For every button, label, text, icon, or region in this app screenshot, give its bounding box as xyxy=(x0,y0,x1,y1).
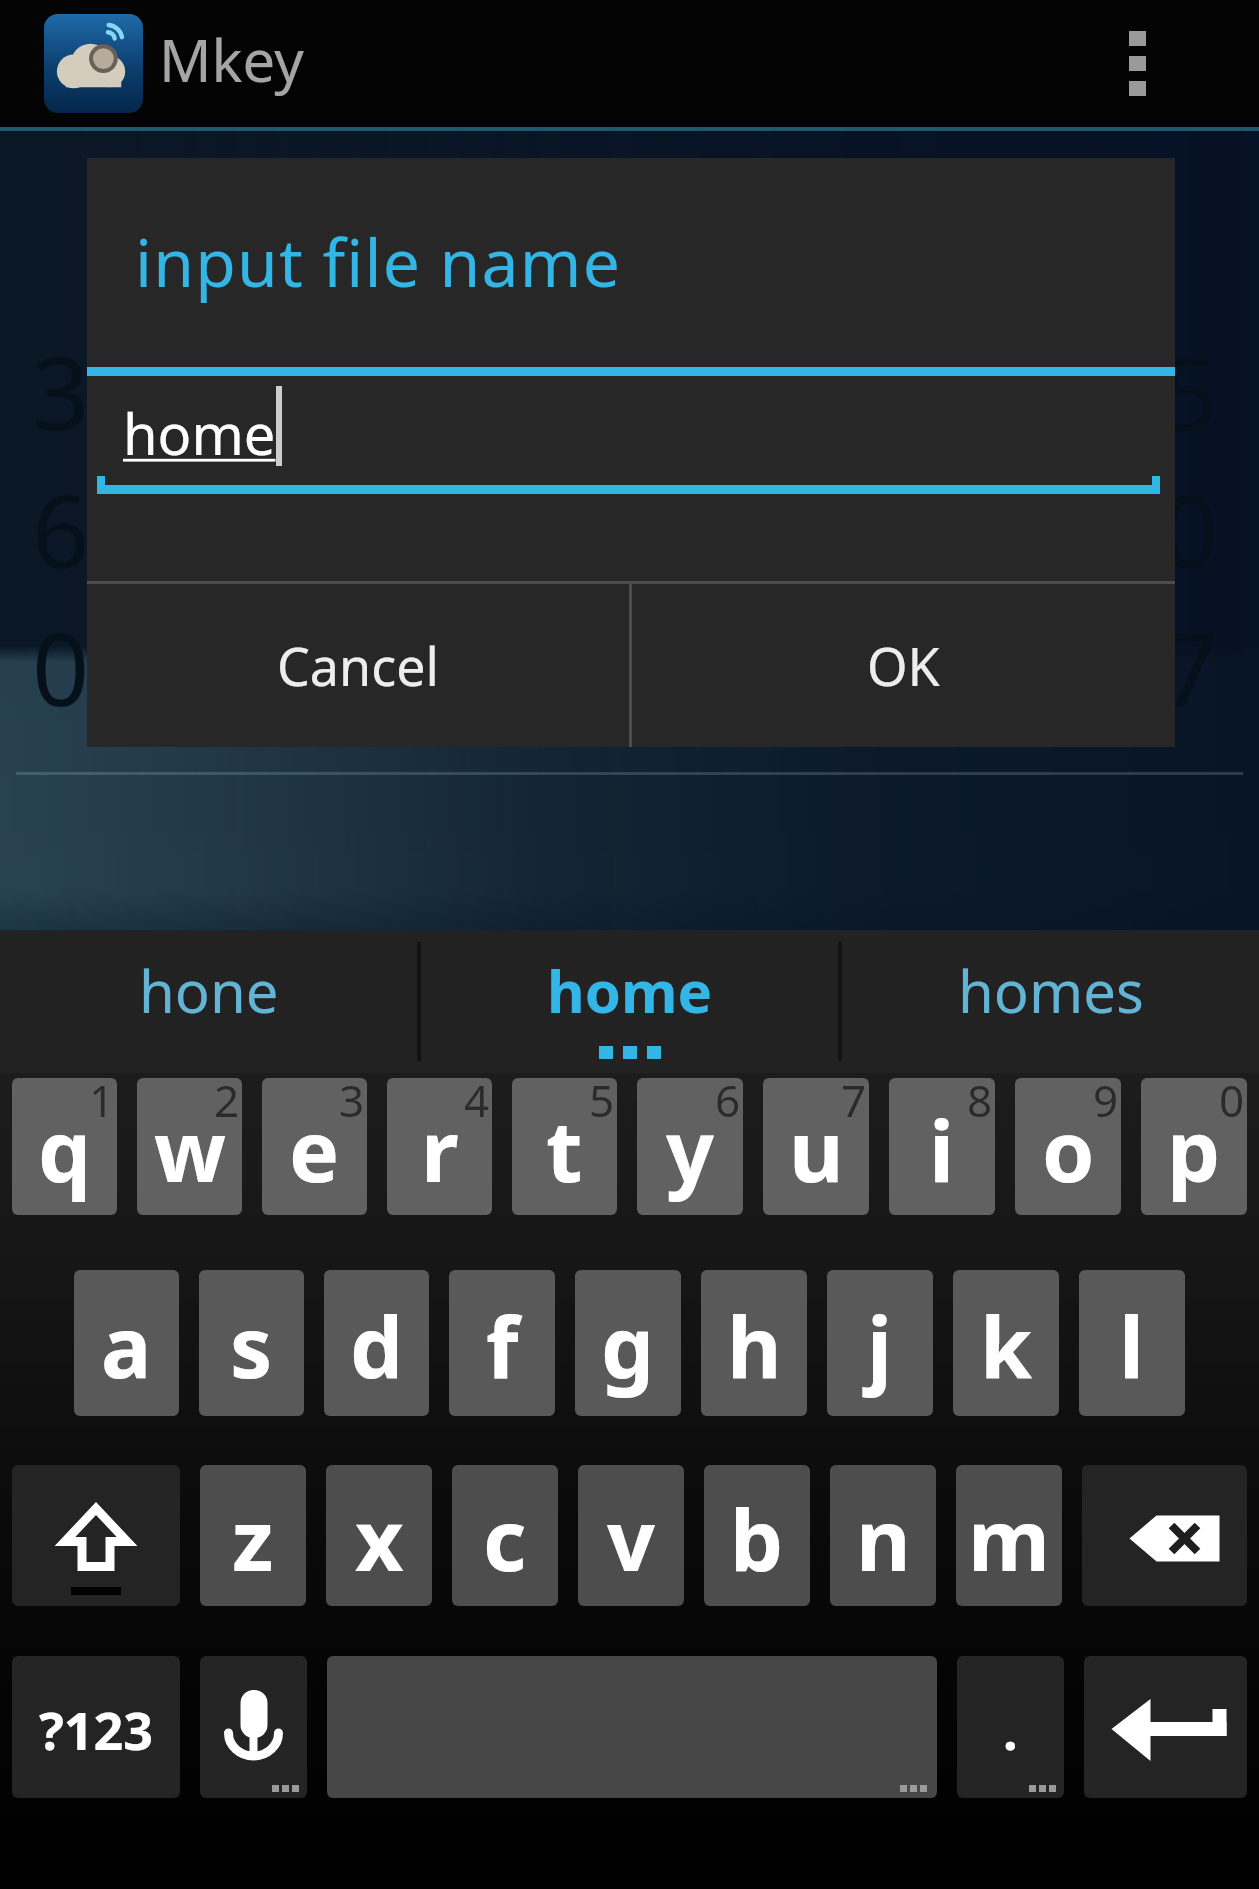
button[interactable]: . xyxy=(957,1656,1064,1798)
staticText: f xyxy=(486,1288,519,1402)
staticText: input file name xyxy=(135,216,622,306)
button[interactable]: z xyxy=(200,1465,306,1606)
staticText: 60 xyxy=(32,461,147,597)
button[interactable]: u xyxy=(763,1078,869,1215)
staticText: 5 xyxy=(1161,323,1219,459)
staticText: x xyxy=(355,1481,404,1595)
staticText: hone xyxy=(139,951,279,1030)
button[interactable]: OK xyxy=(632,584,1175,747)
button[interactable]: b xyxy=(704,1465,810,1606)
staticText: r xyxy=(421,1092,459,1206)
button[interactable]: homes xyxy=(842,930,1259,1073)
staticText: c xyxy=(483,1481,527,1595)
button[interactable]: Voice input xyxy=(200,1656,307,1798)
staticText: 08 xyxy=(32,599,147,735)
button[interactable]: r xyxy=(387,1078,492,1215)
button[interactable]: More options xyxy=(1077,0,1197,127)
button[interactable]: k xyxy=(953,1270,1059,1416)
button[interactable]: hone xyxy=(0,930,417,1073)
staticText: 4 xyxy=(464,1078,490,1130)
staticText: y xyxy=(666,1092,714,1206)
staticText: o xyxy=(1042,1092,1095,1206)
button[interactable]: t xyxy=(512,1078,617,1215)
button[interactable]: g xyxy=(575,1270,681,1416)
button[interactable]: p xyxy=(1141,1078,1247,1215)
button[interactable]: n xyxy=(830,1465,936,1606)
button[interactable]: d xyxy=(324,1270,429,1416)
button[interactable]: v xyxy=(578,1465,684,1606)
button[interactable]: s xyxy=(199,1270,304,1416)
staticText: h xyxy=(727,1288,782,1402)
button[interactable]: h xyxy=(701,1270,807,1416)
button[interactable]: y xyxy=(637,1078,743,1215)
staticText: a xyxy=(101,1288,152,1402)
button[interactable]: x xyxy=(326,1465,432,1606)
staticText: e xyxy=(289,1092,340,1206)
button[interactable]: o xyxy=(1015,1078,1121,1215)
staticText: OK xyxy=(867,630,940,701)
staticText: 0 xyxy=(1219,1078,1245,1130)
staticText: ?123 xyxy=(39,1694,154,1765)
staticText: 3 xyxy=(339,1078,365,1130)
button[interactable]: a xyxy=(74,1270,179,1416)
staticText: 7 xyxy=(841,1078,867,1130)
staticText: s xyxy=(230,1288,273,1402)
staticText: 7 xyxy=(1161,599,1219,735)
button[interactable]: Enter xyxy=(1084,1656,1247,1798)
staticText: i xyxy=(929,1092,955,1206)
staticText: 5 xyxy=(589,1078,615,1130)
button[interactable]: q xyxy=(12,1078,117,1215)
staticText: v xyxy=(607,1481,655,1595)
staticText: l xyxy=(1119,1288,1145,1402)
button[interactable]: l xyxy=(1079,1270,1185,1416)
staticText: z xyxy=(232,1481,274,1595)
staticText: d xyxy=(350,1288,404,1402)
staticText: home xyxy=(547,951,713,1030)
button[interactable]: home xyxy=(421,930,838,1073)
staticText: u xyxy=(789,1092,844,1206)
button[interactable]: Delete xyxy=(1082,1465,1247,1606)
staticText: p xyxy=(1167,1092,1221,1206)
staticText: 34 xyxy=(32,323,147,459)
staticText: n xyxy=(856,1481,911,1595)
button[interactable]: ?123 xyxy=(12,1656,180,1798)
staticText: home xyxy=(123,395,276,471)
staticText: 6 xyxy=(715,1078,741,1130)
button[interactable]: Cancel xyxy=(87,584,629,747)
button[interactable]: App icon xyxy=(44,14,143,113)
button[interactable]: m xyxy=(956,1465,1062,1606)
button[interactable]: c xyxy=(452,1465,558,1606)
staticText: m xyxy=(968,1481,1050,1595)
staticText: Mkey xyxy=(159,20,304,99)
staticText: j xyxy=(867,1288,893,1402)
button[interactable]: e xyxy=(262,1078,367,1215)
staticText: 2 xyxy=(214,1078,240,1130)
staticText: t xyxy=(546,1092,583,1206)
staticText: 0 xyxy=(1161,461,1219,597)
button[interactable]: i xyxy=(889,1078,995,1215)
button[interactable]: f xyxy=(449,1270,555,1416)
staticText: b xyxy=(730,1481,784,1595)
button[interactable]: Space xyxy=(327,1656,937,1798)
button[interactable]: j xyxy=(827,1270,933,1416)
staticText: k xyxy=(980,1288,1033,1402)
staticText: . xyxy=(1003,1694,1018,1765)
button[interactable]: Shift xyxy=(12,1465,180,1606)
staticText: 8 xyxy=(967,1078,993,1130)
staticText: Cancel xyxy=(277,630,439,701)
staticText: w xyxy=(154,1092,226,1206)
staticText: q xyxy=(38,1092,92,1206)
button[interactable]: w xyxy=(137,1078,242,1215)
staticText: 1 xyxy=(89,1078,115,1130)
staticText: homes xyxy=(958,951,1144,1030)
staticText: g xyxy=(601,1288,655,1402)
staticText: 9 xyxy=(1093,1078,1119,1130)
